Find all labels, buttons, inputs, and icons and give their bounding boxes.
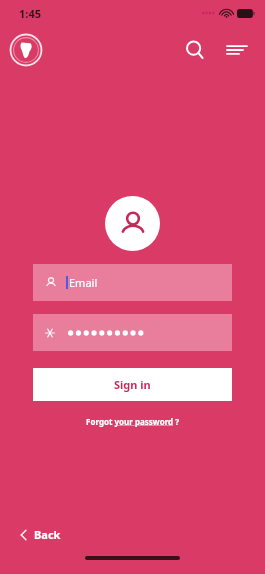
staticText: Sign in [114, 377, 151, 392]
button[interactable] [33, 314, 232, 351]
button[interactable]: Sign in [33, 368, 232, 401]
button[interactable]: Email [33, 264, 232, 301]
staticText: Email [69, 275, 98, 290]
staticText: 1:45 [19, 6, 41, 21]
staticText: Back [34, 527, 61, 542]
staticText: Forgot your password ? [86, 416, 180, 427]
button[interactable]: Forgot your password ? [80, 414, 186, 429]
button[interactable]: Back [14, 523, 67, 546]
button[interactable]: Menu [221, 34, 253, 66]
button[interactable]: Search [179, 34, 211, 66]
button[interactable]: Logo [9, 33, 43, 67]
